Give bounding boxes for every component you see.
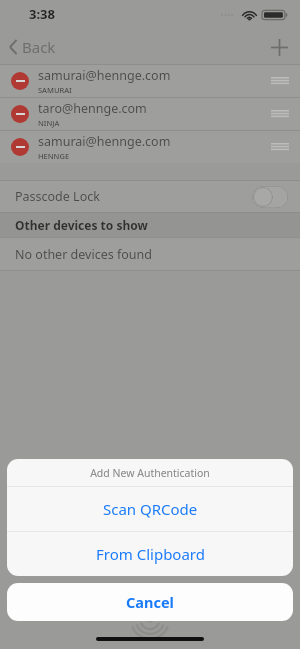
staticText: taro@hennge.com (38, 100, 147, 117)
button[interactable]: Cancel (7, 583, 293, 621)
button[interactable]: Passcode Lock toggle (252, 186, 288, 208)
button[interactable]: Delete HENNGE (11, 138, 29, 156)
staticText: Cancel (126, 592, 174, 612)
button[interactable]: Passcode Lock (0, 181, 300, 212)
staticText: From Clipboard (96, 544, 205, 564)
button[interactable]: Delete NINJA (0, 98, 300, 130)
button[interactable]: No other devices found (0, 238, 300, 270)
staticText: HENNGE (38, 151, 70, 161)
button[interactable]: Delete SAMURAI (0, 65, 300, 97)
staticText: Passcode Lock (15, 188, 252, 205)
button[interactable]: Delete NINJA (11, 105, 29, 123)
button[interactable]: Delete HENNGE (0, 131, 300, 163)
staticText: samurai@hennge.com (38, 133, 171, 150)
button[interactable]: Delete SAMURAI (11, 72, 29, 90)
staticText: SAMURAI (38, 85, 72, 95)
button[interactable]: Reorder NINJA (270, 105, 290, 123)
button[interactable]: Scan QRCode (7, 487, 293, 531)
staticText: Back (22, 37, 56, 57)
staticText: NINJA (38, 118, 60, 128)
staticText: Other devices to show (15, 217, 148, 233)
button[interactable]: Add (259, 33, 300, 62)
staticText: 3:38 (29, 5, 55, 23)
staticText: Add New Authentication (90, 466, 210, 480)
button[interactable]: Reorder SAMURAI (270, 72, 290, 90)
staticText: Scan QRCode (103, 499, 198, 519)
button[interactable]: Reorder HENNGE (270, 138, 290, 156)
button[interactable]: Back (0, 33, 66, 61)
staticText: No other devices found (15, 246, 152, 263)
button[interactable]: From Clipboard (7, 532, 293, 576)
staticText: samurai@hennge.com (38, 67, 171, 84)
